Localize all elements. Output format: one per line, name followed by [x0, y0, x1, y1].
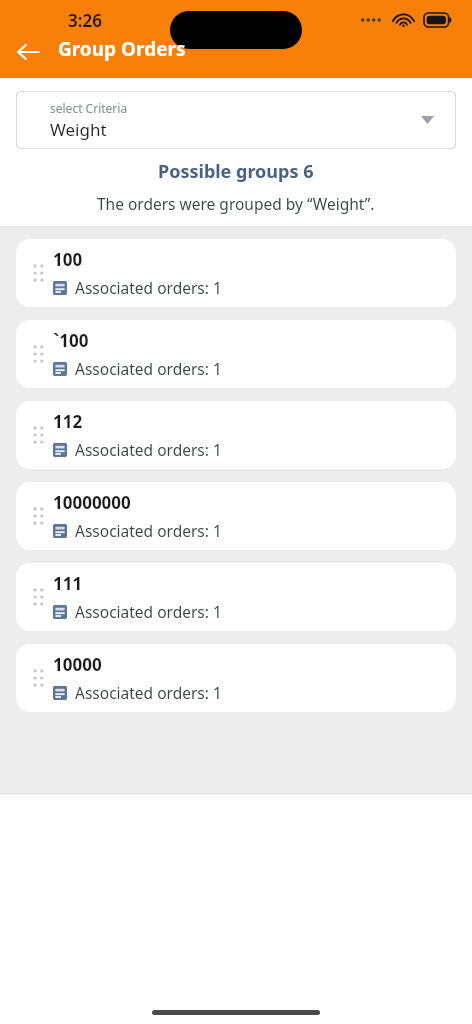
staticText: 100 — [53, 248, 83, 271]
button[interactable]: select Criteria — [16, 91, 456, 149]
button[interactable]: 100 — [16, 239, 456, 307]
staticText: Associated orders: 1 — [75, 358, 222, 379]
staticText: Associated orders: 1 — [75, 682, 222, 703]
button[interactable]: `100 — [16, 320, 456, 388]
staticText: Weight — [50, 118, 107, 141]
button[interactable]: 111 — [16, 563, 456, 631]
button[interactable]: 10000 — [16, 644, 456, 712]
staticText: Possible groups 6 — [158, 159, 314, 184]
staticText: select Criteria — [50, 100, 128, 116]
staticText: 112 — [53, 410, 83, 433]
button[interactable]: Back — [8, 32, 48, 72]
staticText: The orders were grouped by “Weight”. — [97, 193, 375, 214]
staticText: Associated orders: 1 — [75, 439, 222, 460]
staticText: 10000 — [53, 653, 102, 676]
staticText: `100 — [53, 329, 89, 352]
button[interactable]: 112 — [16, 401, 456, 469]
button[interactable]: 10000000 — [16, 482, 456, 550]
staticText: Group Orders — [58, 36, 186, 62]
staticText: 10000000 — [53, 491, 131, 514]
staticText: Associated orders: 1 — [75, 277, 222, 298]
staticText: 111 — [53, 572, 83, 595]
staticText: Associated orders: 1 — [75, 601, 222, 622]
staticText: Associated orders: 1 — [75, 520, 222, 541]
staticText: 3:26 — [68, 9, 102, 32]
